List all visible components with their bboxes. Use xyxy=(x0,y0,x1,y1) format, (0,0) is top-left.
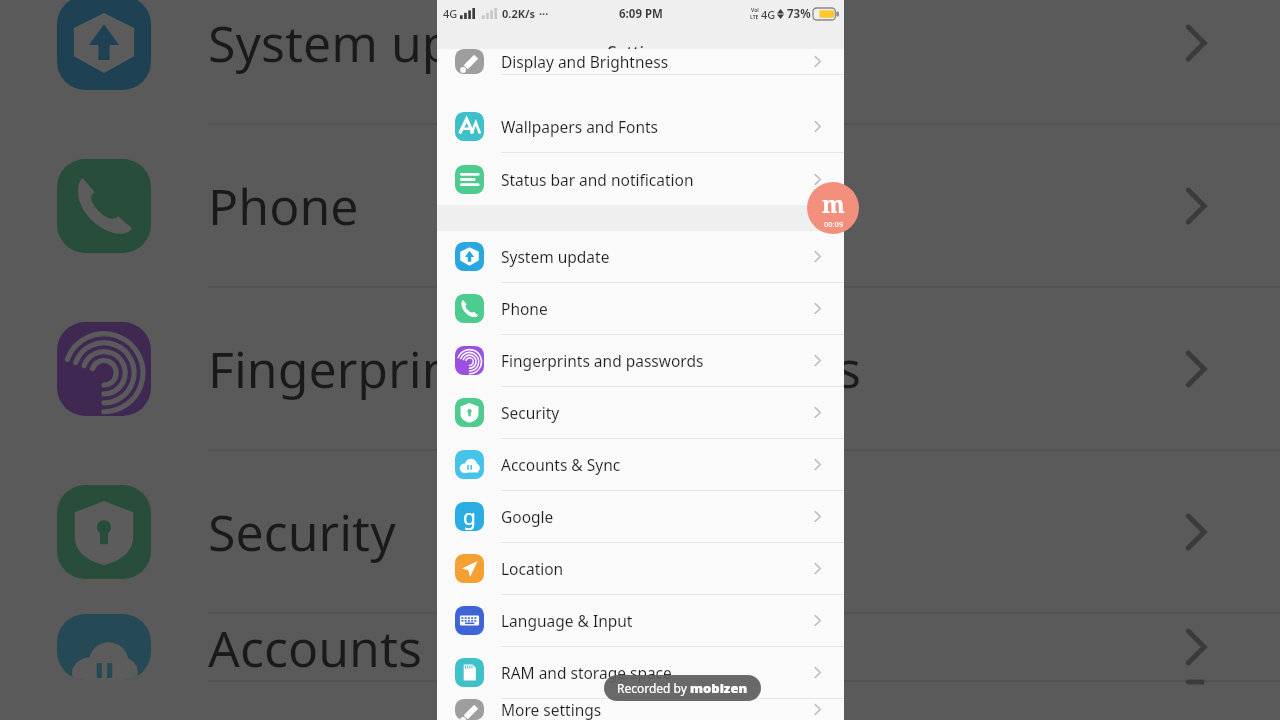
staticText: System update xyxy=(501,246,813,267)
button[interactable]: Display and Brightness xyxy=(437,49,844,75)
staticText: 0.2K/s xyxy=(502,6,536,21)
staticText: mobizen xyxy=(690,679,748,697)
button[interactable]: Status bar and notification xyxy=(437,153,844,205)
staticText: Google xyxy=(501,506,813,527)
staticText: Phone xyxy=(501,298,813,319)
staticText: RAM and storage space xyxy=(501,662,813,683)
button[interactable]: Fingerprints and passwords xyxy=(437,335,844,387)
staticText: Wallpapers and Fonts xyxy=(501,116,813,137)
button[interactable]: System update xyxy=(437,231,844,283)
button[interactable]: Security xyxy=(437,387,844,439)
staticText: Security xyxy=(208,498,1181,566)
staticText: More settings xyxy=(501,699,813,720)
staticText: Display and Brightness xyxy=(501,51,813,72)
staticText: System update xyxy=(208,9,1181,77)
staticText: 00:09 xyxy=(824,219,844,229)
button[interactable]: More settings xyxy=(437,699,844,720)
staticText: Accounts & Sync xyxy=(208,614,1181,680)
staticText: Fingerprints and passwords xyxy=(208,335,1181,403)
staticText: g xyxy=(463,503,476,531)
button[interactable]: g xyxy=(437,491,844,543)
staticText: Phone xyxy=(208,172,1181,240)
button[interactable]: Phone xyxy=(437,283,844,335)
button[interactable]: Language & Input xyxy=(437,595,844,647)
staticText: LTE xyxy=(750,14,759,21)
staticText: Status bar and notification xyxy=(501,169,813,190)
staticText: ··· xyxy=(539,6,549,21)
staticText: m xyxy=(822,188,845,219)
staticText: 4G xyxy=(761,7,776,22)
button[interactable]: Wallpapers and Fonts xyxy=(437,101,844,153)
staticText: Language & Input xyxy=(501,610,813,631)
staticText: Accounts & Sync xyxy=(501,454,813,475)
staticText: Location xyxy=(501,558,813,579)
button[interactable]: RAM and storage space xyxy=(437,647,844,699)
staticText: 6:09 PM xyxy=(619,6,663,22)
staticText: Vol xyxy=(751,7,759,14)
button[interactable]: Location xyxy=(437,543,844,595)
staticText: Settings xyxy=(607,40,674,63)
button[interactable]: Accounts & Sync xyxy=(437,439,844,491)
staticText: Fingerprints and passwords xyxy=(501,350,813,371)
staticText: 73% xyxy=(787,6,811,22)
staticText: Security xyxy=(501,402,813,423)
staticText: 4G xyxy=(443,6,458,21)
staticText: Recorded by xyxy=(617,680,690,696)
button[interactable]: Mobizen recorder xyxy=(807,182,859,234)
